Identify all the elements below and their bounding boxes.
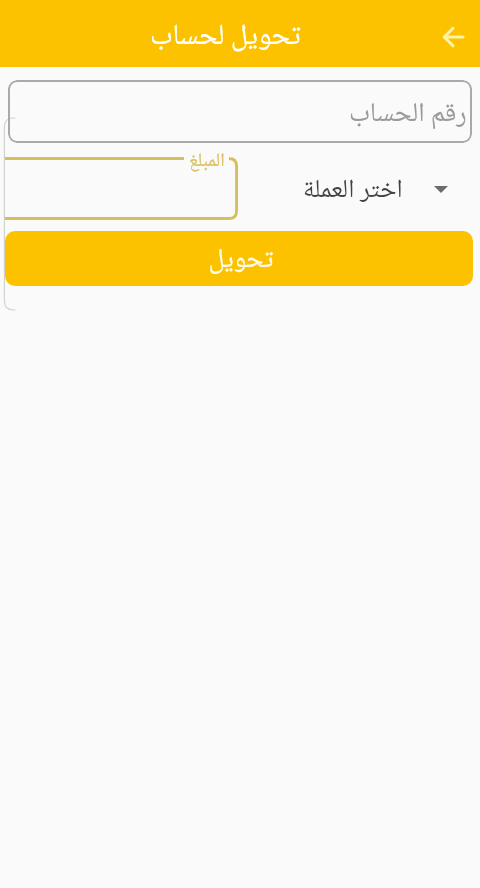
button[interactable]: Back [429, 13, 477, 61]
staticText: تحويل [208, 238, 274, 284]
staticText: تحويل لحساب [150, 13, 301, 62]
button[interactable]: اختر العملة [294, 168, 448, 214]
staticText: المبلغ [189, 146, 225, 178]
button[interactable]: رقم الحساب [8, 80, 472, 143]
button[interactable]: المبلغ [0, 157, 238, 220]
staticText: رقم الحساب [349, 92, 467, 138]
staticText: اختر العملة [303, 169, 403, 213]
button[interactable]: تحويل [5, 231, 473, 286]
